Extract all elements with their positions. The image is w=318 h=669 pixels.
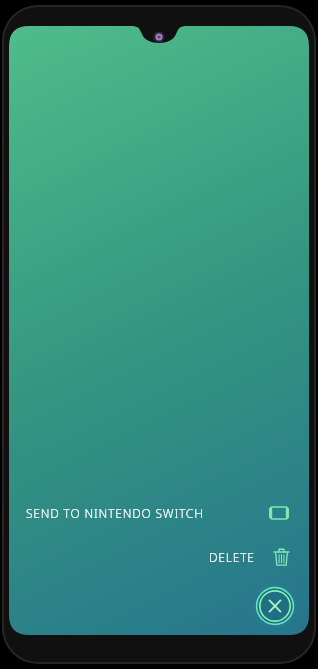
staticText: SEND TO NINTENDO SWITCH <box>26 505 204 521</box>
button[interactable]: SEND TO NINTENDO SWITCH <box>9 500 309 526</box>
button[interactable]: DELETE <box>193 543 309 571</box>
staticText: DELETE <box>209 549 255 565</box>
button[interactable]: Close <box>252 583 298 629</box>
